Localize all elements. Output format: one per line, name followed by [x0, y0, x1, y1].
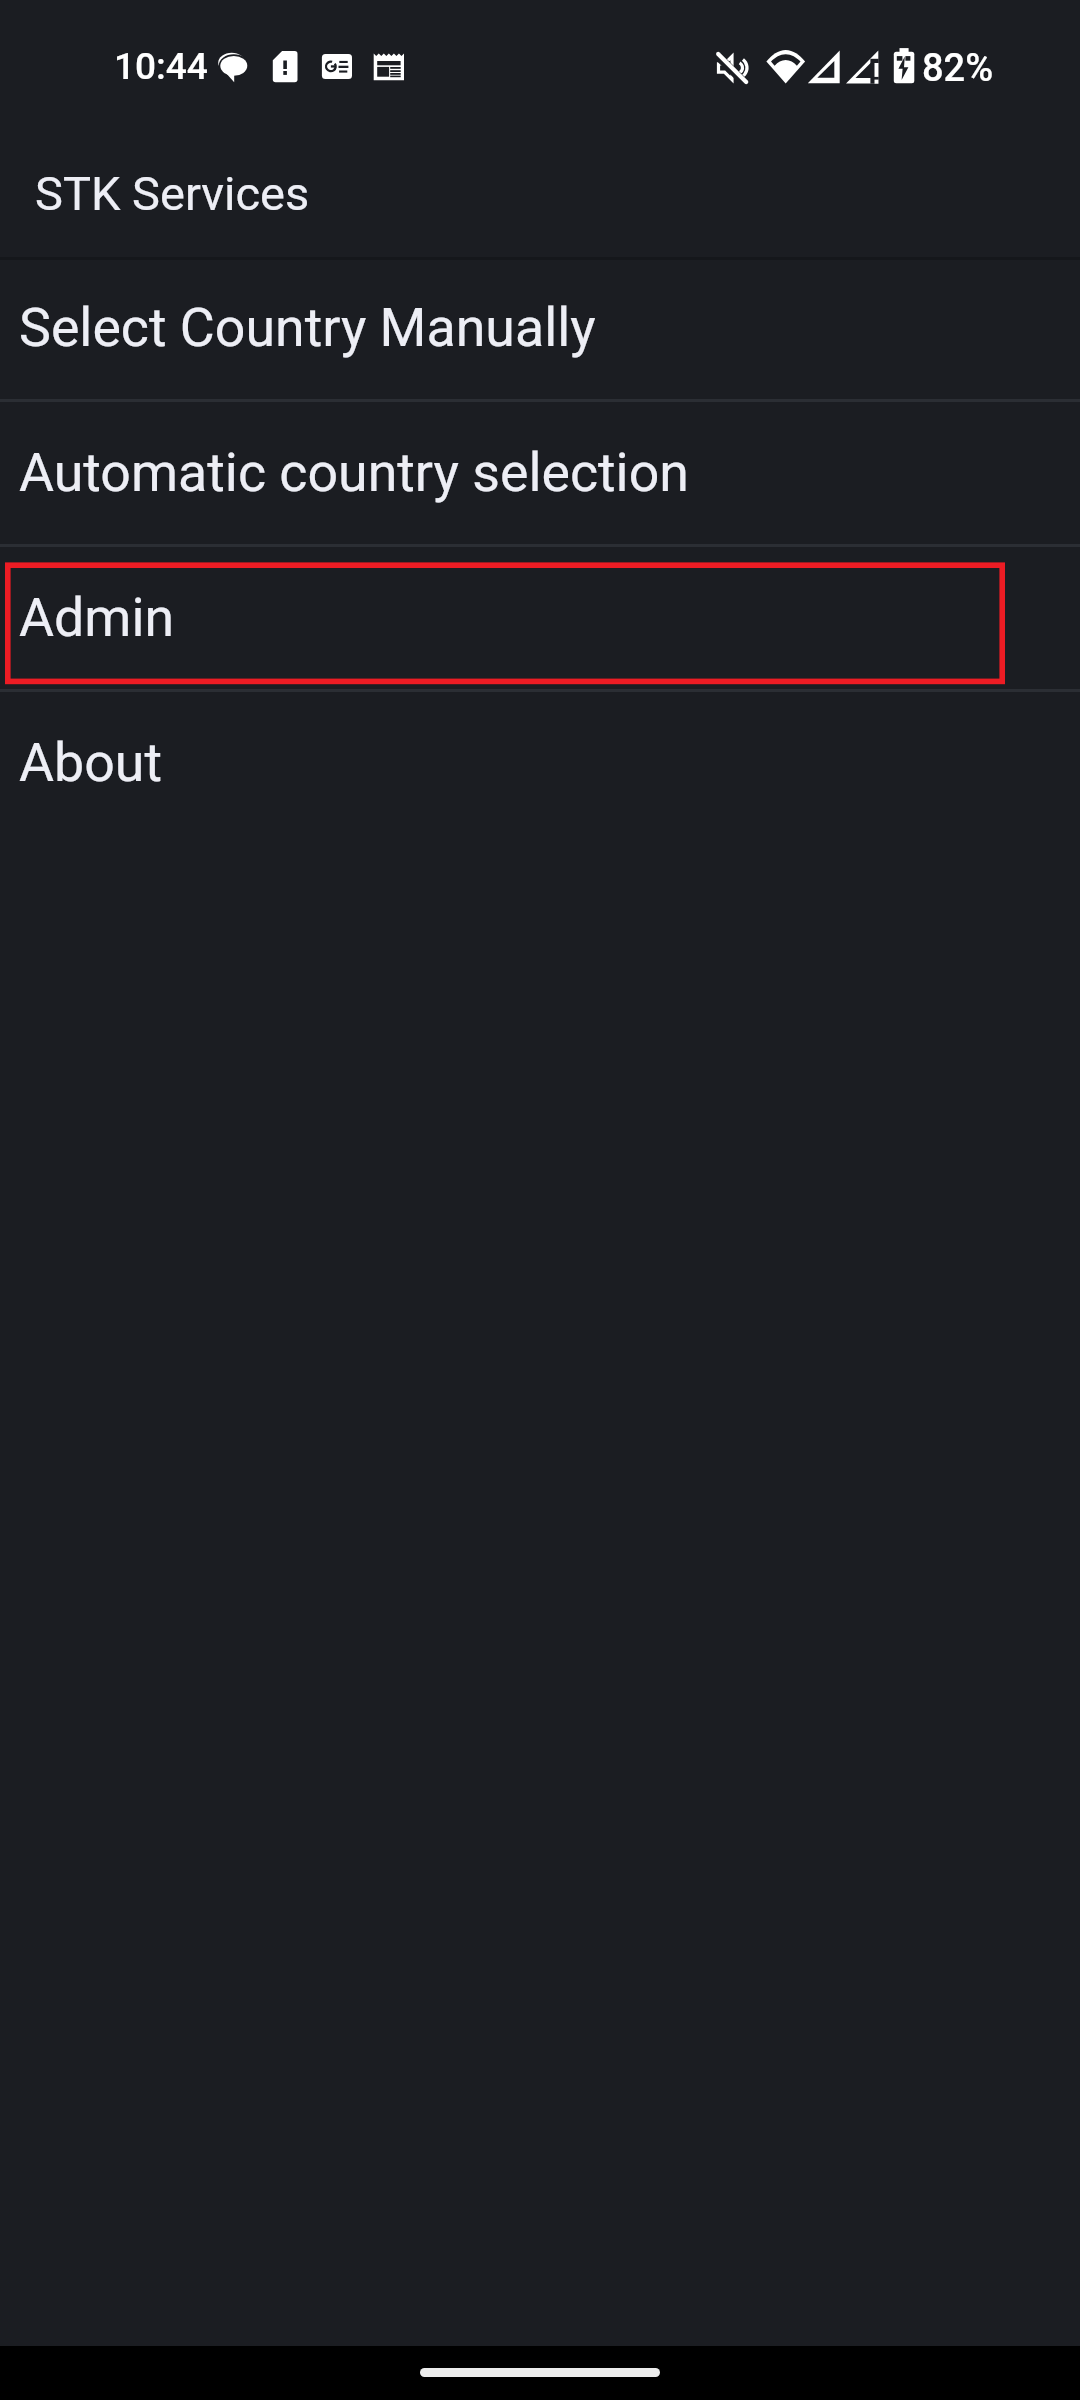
button[interactable]: Admin: [0, 547, 1080, 692]
staticText: Admin: [19, 586, 175, 649]
staticText: 10:44: [114, 45, 208, 88]
staticText: Select Country Manually: [19, 296, 596, 359]
button[interactable]: Home: [420, 2368, 660, 2377]
staticText: About: [19, 731, 162, 794]
staticText: 82%: [922, 46, 994, 91]
button[interactable]: About: [0, 692, 1080, 837]
button[interactable]: Automatic country selection: [0, 402, 1080, 547]
staticText: STK Services: [35, 166, 310, 221]
button[interactable]: Select Country Manually: [0, 257, 1080, 402]
staticText: Automatic country selection: [19, 441, 689, 504]
